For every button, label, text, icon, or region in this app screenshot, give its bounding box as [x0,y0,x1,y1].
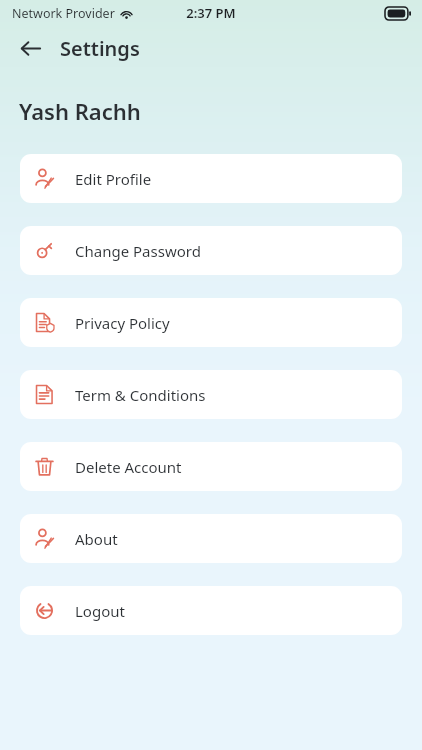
button[interactable]: Edit Profile [20,154,402,203]
button[interactable]: Term & Conditions [20,370,402,419]
staticText: Logout [75,601,125,621]
staticText: Edit Profile [75,169,152,189]
staticText: Yash Rachh [19,96,141,126]
button[interactable]: Back [17,35,43,61]
staticText: Change Password [75,241,201,261]
staticText: About [75,529,118,549]
staticText: 2:37 PM [186,4,236,22]
staticText: Delete Account [75,457,182,477]
button[interactable]: About [20,514,402,563]
button[interactable]: Change Password [20,226,402,275]
button[interactable]: Logout [20,586,402,635]
staticText: Network Provider [12,5,115,22]
button[interactable]: Delete Account [20,442,402,491]
staticText: Privacy Policy [75,313,170,333]
staticText: Term & Conditions [75,385,206,405]
staticText: Settings [60,35,140,62]
button[interactable]: Privacy Policy [20,298,402,347]
